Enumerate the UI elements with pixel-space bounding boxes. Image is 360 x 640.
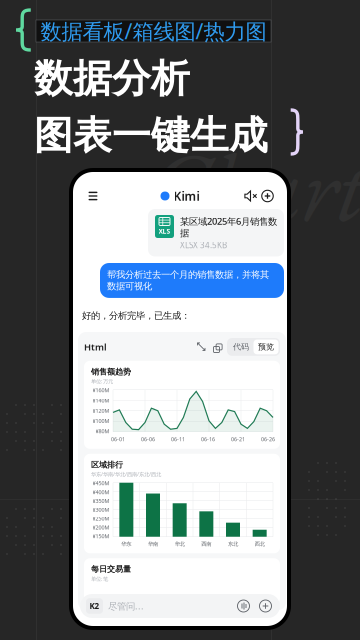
staticText: 华东 (121, 541, 131, 547)
staticText: 某区域2025年6月销售数据 (180, 215, 277, 239)
staticText: 单位: 万元 (91, 378, 113, 385)
staticText: ¥250M (92, 515, 109, 522)
staticText: XLS (158, 227, 170, 236)
staticText: 华东/华南/华北/西南/东北/西北 (91, 471, 161, 478)
staticText: 每日交易量 (91, 564, 131, 574)
button[interactable]: Expand (194, 339, 209, 354)
staticText: XLSX 34.5KB (180, 240, 227, 250)
staticText: 06-16 (201, 436, 215, 443)
staticText: Chart (148, 124, 360, 249)
staticText: 06-21 (231, 436, 245, 443)
staticText: ¥200M (92, 524, 109, 531)
staticText: ¥450M (92, 480, 109, 487)
staticText: 06-06 (141, 436, 155, 443)
staticText: ¥300M (92, 506, 109, 513)
button[interactable]: New chat (260, 188, 275, 204)
staticText: 华南 (148, 541, 158, 547)
staticText: 06-11 (171, 436, 185, 443)
button[interactable]: 预览 (253, 339, 278, 354)
staticText: 单位: 笔 (91, 575, 108, 582)
staticText: Kimi (173, 188, 199, 204)
staticText: Html (84, 341, 107, 353)
button[interactable]: 代码 (228, 339, 253, 354)
staticText: 数据看板/箱线图/热力图 (40, 17, 266, 45)
staticText: 东北 (228, 541, 238, 547)
staticText: ¥120M (92, 407, 109, 414)
staticText: 华北 (175, 541, 185, 547)
staticText: 数据分析 (34, 55, 190, 102)
staticText: ¥80M (95, 428, 109, 435)
staticText: 图表一键生成 (34, 112, 268, 159)
staticText: ¥100M (92, 417, 109, 424)
staticText: 06-26 (261, 436, 275, 443)
button[interactable]: Copy (209, 339, 224, 354)
button[interactable]: Mute (241, 188, 260, 204)
staticText: 区域排行 (91, 460, 123, 470)
staticText: 06-01 (111, 436, 125, 443)
staticText: 西北 (255, 541, 265, 547)
staticText: ¥160M (92, 387, 109, 394)
button[interactable]: Add attachment (257, 597, 274, 614)
staticText: ¥400M (92, 488, 109, 496)
staticText: 帮我分析过去一个月的销售数据，并将其数据可视化 (107, 269, 269, 292)
staticText: 代码 (233, 342, 249, 352)
staticText: 预览 (258, 342, 274, 352)
staticText: K2 (89, 601, 99, 611)
staticText: ¥150M (92, 533, 109, 540)
staticText: 销售额趋势 (91, 367, 131, 377)
button[interactable]: Voice input (235, 597, 252, 614)
staticText: 西南 (201, 541, 211, 547)
staticText: ¥140M (92, 397, 109, 404)
button[interactable]: Menu (85, 188, 101, 204)
staticText: 尽管问... (108, 600, 144, 612)
staticText: 好的，分析完毕，已生成： (82, 310, 190, 321)
staticText: ¥350M (92, 497, 109, 504)
